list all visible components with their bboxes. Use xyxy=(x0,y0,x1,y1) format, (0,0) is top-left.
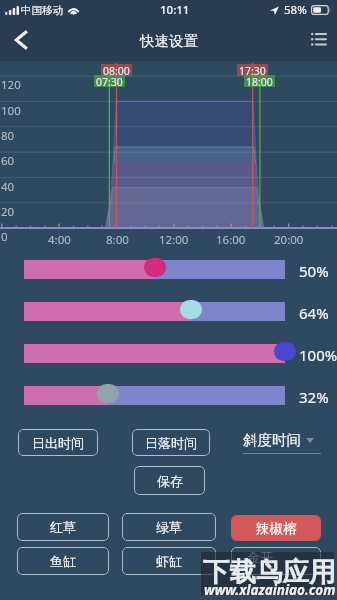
button[interactable]: 日出时间 xyxy=(18,429,98,456)
button[interactable]: 绿草 xyxy=(122,513,216,541)
staticText: 100 xyxy=(1,103,21,119)
staticText: 0 xyxy=(1,229,8,245)
button[interactable] xyxy=(24,302,285,321)
staticText: 60 xyxy=(1,153,15,169)
staticText: 08:00 xyxy=(103,64,130,76)
staticText: 快速设置 xyxy=(140,32,198,50)
button[interactable]: Back xyxy=(0,20,44,61)
staticText: www.xlazainiao.com xyxy=(204,581,336,599)
staticText: 金开 xyxy=(247,549,273,565)
staticText: 鱼缸 xyxy=(50,553,76,569)
staticText: 虾缸 xyxy=(156,553,182,569)
button[interactable]: 斜度时间 xyxy=(243,431,321,454)
staticText: 120 xyxy=(1,77,21,93)
staticText: 日落时间 xyxy=(145,435,197,451)
staticText: 16:00 xyxy=(216,232,246,248)
staticText: 20 xyxy=(1,204,15,220)
button[interactable]: 辣椒榕 xyxy=(231,515,321,541)
button[interactable] xyxy=(24,260,285,279)
staticText: 50% xyxy=(299,261,329,281)
staticText: 80 xyxy=(1,128,15,144)
staticText: 10:11 xyxy=(160,2,190,18)
staticText: 12:00 xyxy=(159,232,189,248)
staticText: 8:00 xyxy=(106,232,129,248)
staticText: 100% xyxy=(299,345,337,365)
staticText: 18:00 xyxy=(246,75,273,87)
staticText: 32% xyxy=(299,387,329,407)
staticText: 辣椒榕 xyxy=(256,520,297,537)
button[interactable] xyxy=(24,386,285,405)
staticText: 64% xyxy=(299,303,329,323)
staticText: 下载鸟应用 xyxy=(203,555,336,588)
staticText: 红草 xyxy=(50,519,76,535)
staticText: 20:00 xyxy=(274,232,304,248)
button[interactable]: 红草 xyxy=(17,513,109,541)
staticText: 58% xyxy=(284,2,307,18)
staticText: 40 xyxy=(1,179,15,195)
staticText: 4:00 xyxy=(48,232,71,248)
button[interactable]: 日落时间 xyxy=(132,429,210,456)
staticText: 17:30 xyxy=(239,64,266,76)
staticText: 绿草 xyxy=(156,519,182,535)
button[interactable]: List xyxy=(300,20,337,61)
staticText: 07:30 xyxy=(96,75,123,87)
staticText: 斜度时间 xyxy=(243,431,301,449)
button[interactable]: 虾缸 xyxy=(122,547,216,575)
button[interactable] xyxy=(24,344,285,363)
staticText: 保存 xyxy=(157,473,183,489)
button[interactable]: 鱼缸 xyxy=(17,547,109,575)
button[interactable]: 保存 xyxy=(134,466,205,495)
staticText: 中国移动 xyxy=(21,4,63,17)
staticText: 日出时间 xyxy=(32,435,84,451)
button[interactable] xyxy=(231,547,321,575)
